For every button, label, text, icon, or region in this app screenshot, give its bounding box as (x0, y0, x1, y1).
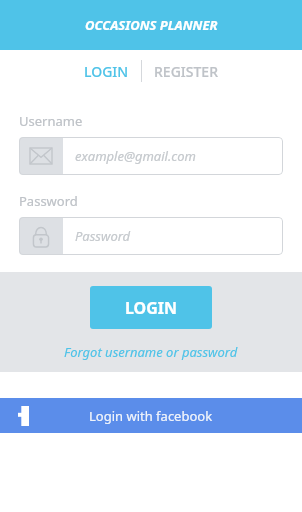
staticText: Password (75, 227, 131, 245)
staticText: Forgot username or password (64, 343, 238, 361)
button[interactable]: REGISTER (142, 54, 230, 89)
button[interactable]: LOGIN (90, 286, 212, 329)
button[interactable]: Forgot username or password (56, 341, 246, 363)
other: Email (30, 148, 52, 164)
other: Facebook (18, 406, 29, 426)
staticText: Login with facebook (89, 407, 213, 425)
button[interactable]: Password (19, 217, 283, 255)
staticText: LOGIN (125, 297, 178, 319)
staticText: Username (19, 112, 83, 130)
button[interactable]: Facebook (0, 398, 302, 433)
staticText: OCCASIONS PLANNER (85, 16, 218, 34)
staticText: REGISTER (154, 62, 218, 81)
other: Password (32, 226, 50, 247)
button[interactable]: Email (19, 137, 283, 175)
button[interactable]: LOGIN (72, 54, 141, 89)
staticText: example@gmail.com (75, 147, 196, 165)
staticText: LOGIN (84, 62, 129, 81)
staticText: Password (19, 192, 78, 210)
